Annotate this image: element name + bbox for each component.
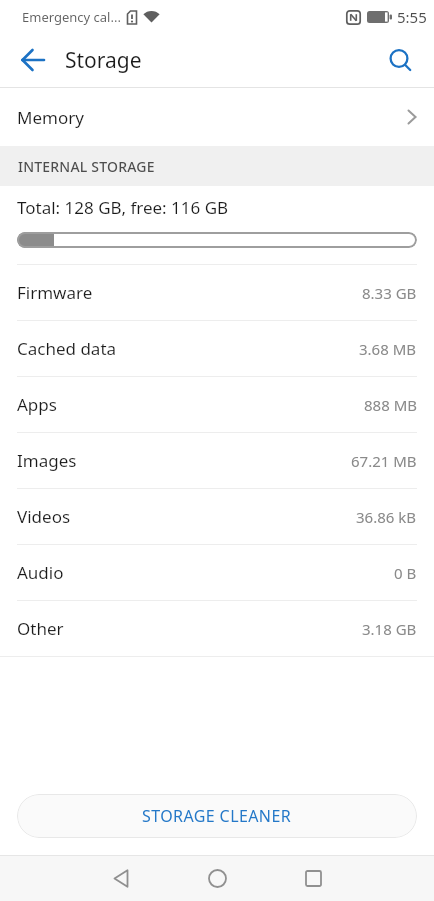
staticText: 3.18 GB xyxy=(362,619,417,639)
staticText: 888 MB xyxy=(364,395,417,415)
staticText: Memory xyxy=(17,106,84,129)
staticText: Total: 128 GB, free: 116 GB xyxy=(17,196,229,219)
button[interactable] xyxy=(73,856,169,901)
staticText: Emergency cal... xyxy=(22,8,121,26)
button[interactable]: Audio xyxy=(0,545,434,601)
button[interactable] xyxy=(169,856,265,901)
button[interactable]: Other xyxy=(0,601,434,657)
staticText: 67.21 MB xyxy=(351,451,417,471)
staticText: STORAGE CLEANER xyxy=(142,805,292,827)
staticText: 0 B xyxy=(394,563,417,583)
staticText: Firmware xyxy=(17,281,93,304)
staticText: Audio xyxy=(17,561,64,584)
button[interactable]: Memory xyxy=(0,88,434,146)
button[interactable] xyxy=(265,856,361,901)
staticText: 8.33 GB xyxy=(362,283,417,303)
staticText: Other xyxy=(17,617,64,640)
staticText: INTERNAL STORAGE xyxy=(18,157,155,176)
staticText: Cached data xyxy=(17,337,117,360)
staticText: 5:55 xyxy=(397,7,427,27)
staticText: Images xyxy=(17,449,77,472)
button[interactable]: Cached data xyxy=(0,321,434,377)
staticText: Storage xyxy=(65,46,142,75)
button[interactable]: Apps xyxy=(0,377,434,433)
button[interactable] xyxy=(15,42,51,78)
button[interactable]: Firmware xyxy=(0,265,434,321)
button[interactable]: Videos xyxy=(0,489,434,545)
button[interactable]: Images xyxy=(0,433,434,489)
staticText: Apps xyxy=(17,393,57,416)
button[interactable] xyxy=(383,43,417,77)
staticText: 36.86 kB xyxy=(356,507,417,527)
staticText: 3.68 MB xyxy=(359,339,417,359)
button[interactable]: STORAGE CLEANER xyxy=(17,794,417,838)
staticText: Videos xyxy=(17,505,71,528)
